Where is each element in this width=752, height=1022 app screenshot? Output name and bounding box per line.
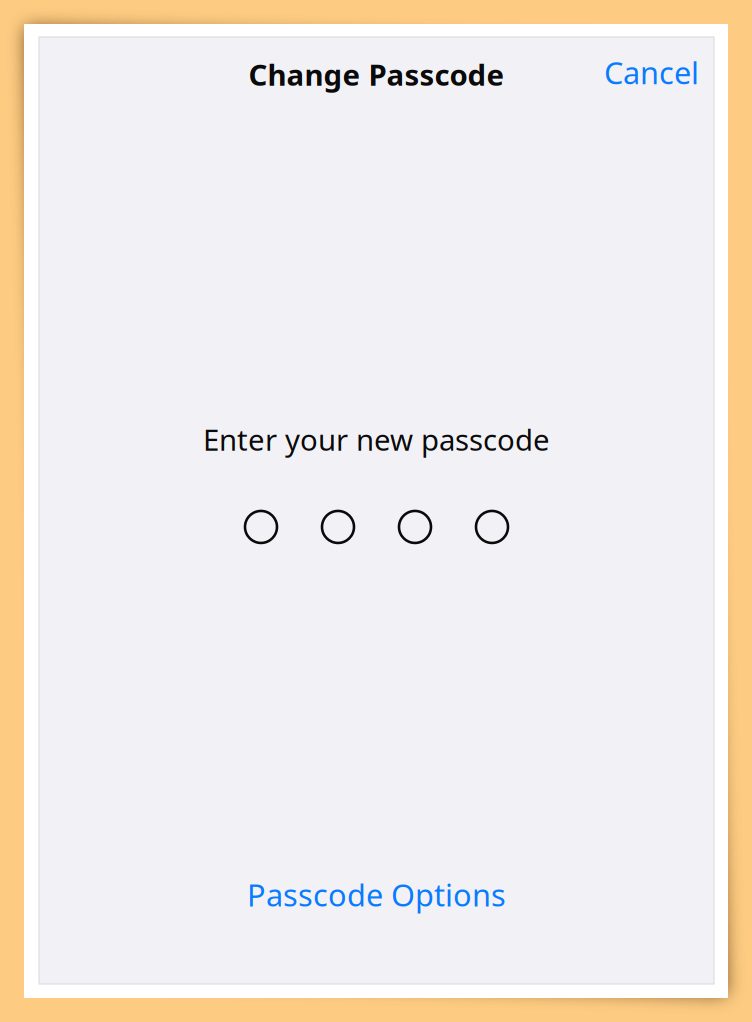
- staticText: Enter your new passcode: [203, 420, 550, 459]
- staticText: Cancel: [604, 52, 699, 93]
- button[interactable]: Cancel: [596, 46, 707, 99]
- staticText: Passcode Options: [247, 874, 506, 915]
- button[interactable]: Passcode Options: [39, 866, 714, 923]
- staticText: Change Passcode: [248, 55, 504, 94]
